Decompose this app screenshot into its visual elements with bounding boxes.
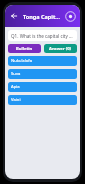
button[interactable]: Profile [64, 10, 76, 22]
staticText: Bulletin [16, 46, 33, 52]
button[interactable]: Suva [8, 69, 77, 79]
button[interactable]: Apia [8, 82, 77, 92]
staticText: Nuku'alofa [11, 58, 33, 64]
staticText: Tonga Capital and ... [23, 13, 61, 20]
button[interactable]: Vaini [8, 95, 77, 105]
staticText: Q1. What is the capital city of Tonga? [11, 33, 74, 39]
staticText: Answer (0) [49, 46, 72, 52]
button[interactable]: Nuku'alofa [8, 56, 77, 66]
button[interactable]: Back [9, 11, 19, 21]
staticText: Apia [11, 84, 20, 90]
staticText: Suva [11, 71, 21, 77]
button[interactable]: Bulletin [8, 44, 41, 53]
staticText: Vaini [11, 97, 21, 103]
button[interactable]: Answer (0) [44, 44, 77, 53]
